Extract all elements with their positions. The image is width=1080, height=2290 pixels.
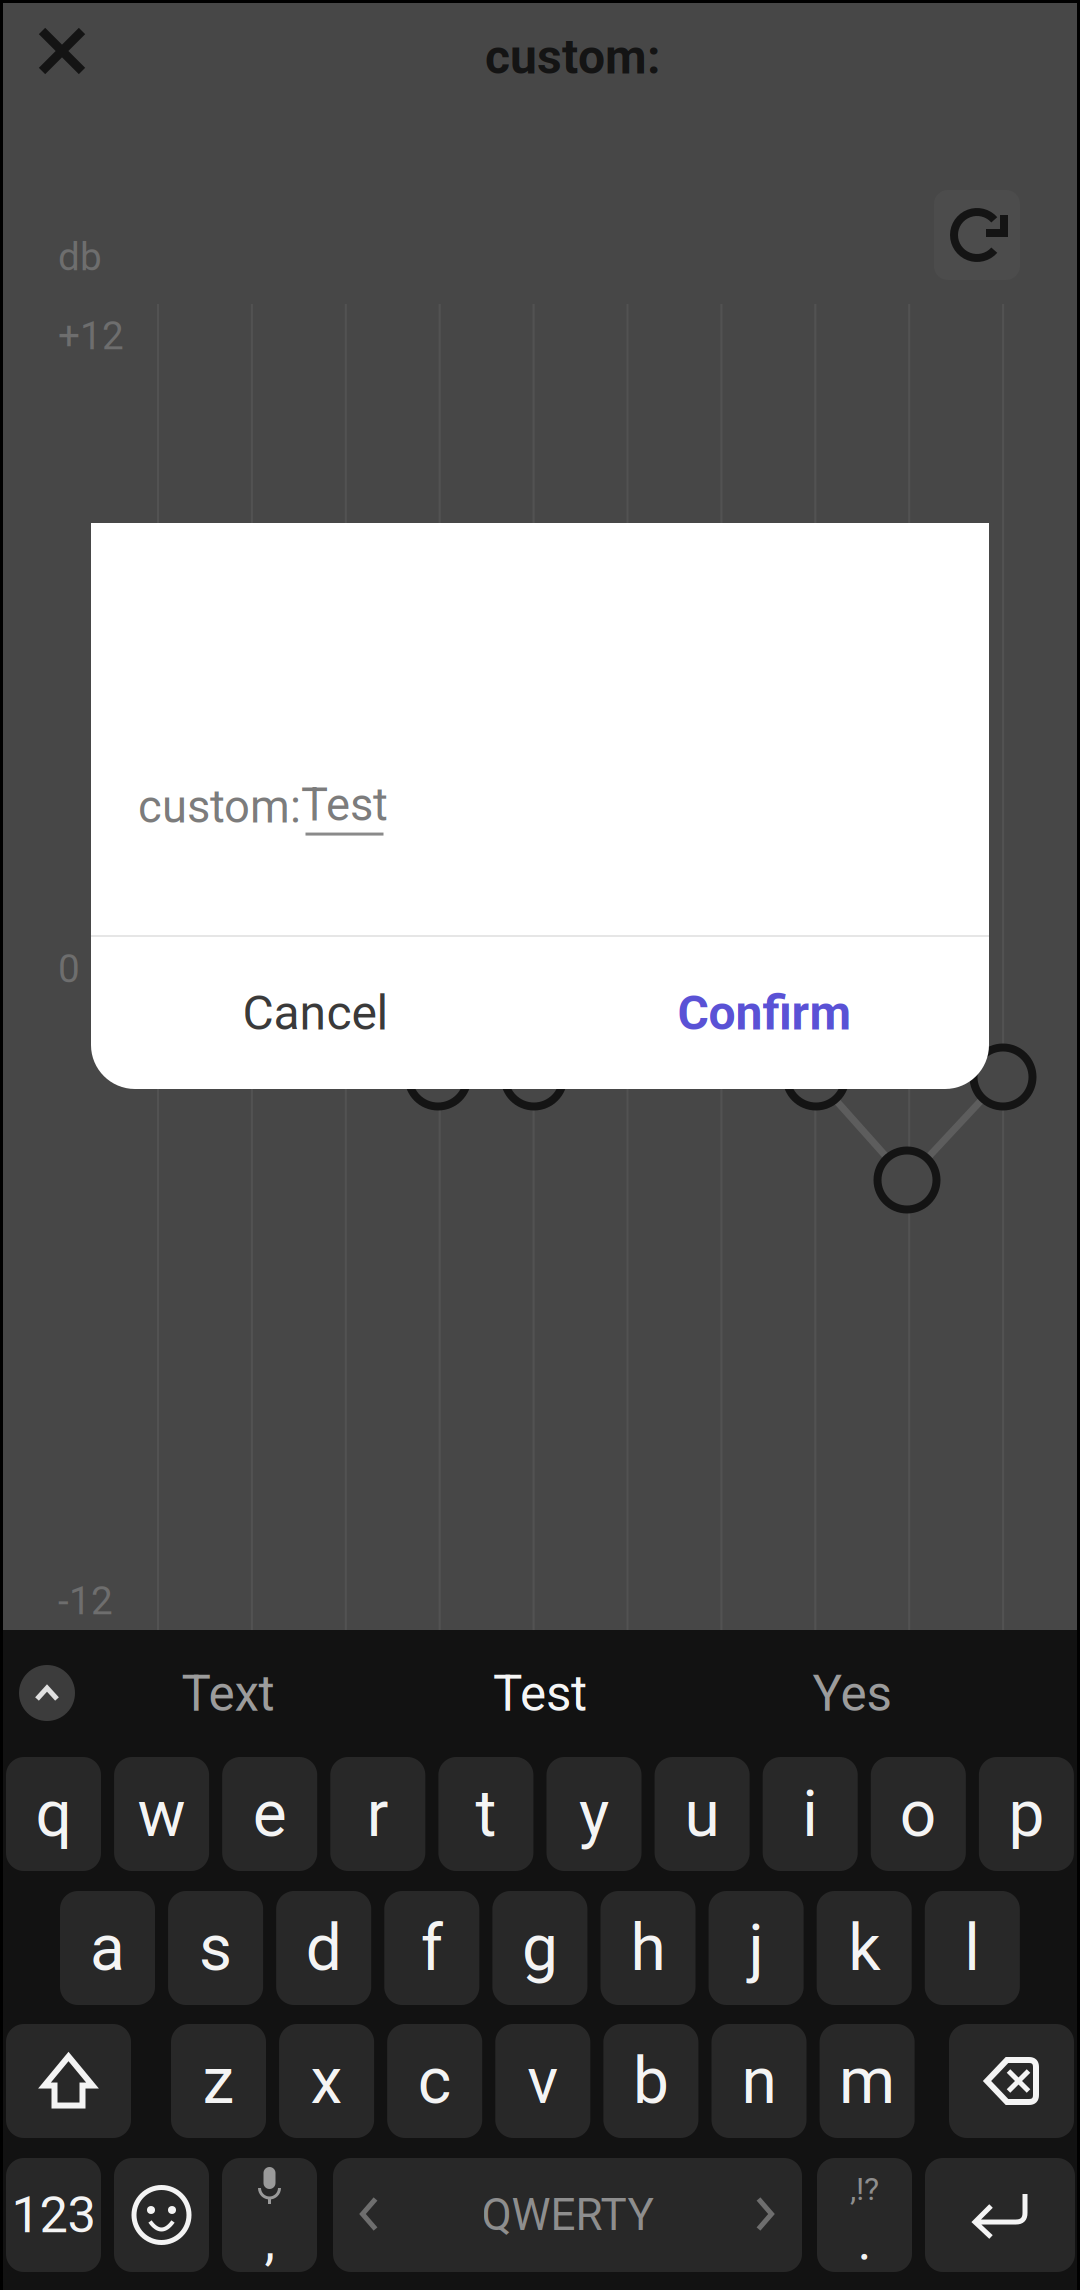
staticText: o bbox=[900, 1776, 937, 1851]
staticText: Cancel bbox=[242, 985, 388, 1041]
button[interactable]: p bbox=[979, 1757, 1074, 1871]
button[interactable]: h bbox=[600, 1891, 695, 2005]
button[interactable]: Shift bbox=[6, 2024, 131, 2138]
button[interactable]: w bbox=[114, 1757, 209, 1871]
staticText: i bbox=[802, 1776, 818, 1851]
staticText: m bbox=[839, 2043, 895, 2118]
staticText: 123 bbox=[11, 2185, 95, 2245]
staticText: f bbox=[421, 1910, 443, 1985]
button[interactable]: g bbox=[492, 1891, 587, 2005]
button[interactable]: j bbox=[709, 1891, 804, 2005]
button[interactable]: c bbox=[387, 2024, 482, 2138]
staticText: Confirm bbox=[677, 985, 851, 1041]
staticText: x bbox=[311, 2043, 343, 2118]
button[interactable]: Confirm bbox=[540, 937, 989, 1089]
staticText: r bbox=[367, 1776, 389, 1851]
button[interactable]: q bbox=[6, 1757, 101, 1871]
staticText: custom: bbox=[138, 780, 301, 833]
staticText: e bbox=[253, 1776, 287, 1851]
button[interactable]: b bbox=[603, 2024, 698, 2138]
staticText: z bbox=[202, 2043, 234, 2118]
button[interactable]: m bbox=[820, 2024, 915, 2138]
staticText: ,!? bbox=[850, 2170, 879, 2208]
button[interactable]: Expand suggestions bbox=[19, 1665, 75, 1721]
staticText: l bbox=[964, 1910, 980, 1985]
button[interactable]: Test bbox=[384, 1636, 696, 1752]
button[interactable]: d bbox=[276, 1891, 371, 2005]
staticText: , bbox=[264, 2210, 274, 2272]
button[interactable]: o bbox=[871, 1757, 966, 1871]
staticText: y bbox=[579, 1776, 609, 1851]
button[interactable]: v bbox=[495, 2024, 590, 2138]
staticText: k bbox=[848, 1910, 880, 1985]
staticText: d bbox=[306, 1910, 342, 1985]
staticText: +12 bbox=[58, 313, 124, 359]
staticText: w bbox=[138, 1776, 186, 1851]
staticText: db bbox=[58, 234, 102, 280]
staticText: s bbox=[199, 1910, 232, 1985]
button[interactable]: e bbox=[222, 1757, 317, 1871]
button[interactable]: z bbox=[171, 2024, 266, 2138]
staticText: c bbox=[418, 2043, 452, 2118]
button[interactable]: s bbox=[168, 1891, 263, 2005]
staticText: 0 bbox=[58, 946, 80, 992]
staticText: Yes bbox=[812, 1665, 891, 1723]
staticText: custom: bbox=[485, 29, 661, 85]
button[interactable]: x bbox=[279, 2024, 374, 2138]
button[interactable]: Text bbox=[72, 1636, 384, 1752]
button[interactable]: Emoji bbox=[114, 2158, 209, 2272]
button[interactable]: i bbox=[763, 1757, 858, 1871]
button[interactable]: Reset bbox=[934, 190, 1020, 280]
button[interactable]: k bbox=[817, 1891, 912, 2005]
staticText: v bbox=[527, 2043, 558, 2118]
button[interactable]: a bbox=[60, 1891, 155, 2005]
staticText: p bbox=[1008, 1776, 1044, 1851]
button[interactable]: Close bbox=[10, 0, 114, 102]
staticText: h bbox=[630, 1910, 665, 1985]
staticText: Text bbox=[181, 1665, 274, 1723]
button[interactable]: Cancel bbox=[91, 937, 540, 1089]
button[interactable]: Return bbox=[925, 2158, 1075, 2272]
button[interactable]: r bbox=[330, 1757, 425, 1871]
button[interactable]: Period bbox=[817, 2158, 912, 2272]
staticText: g bbox=[522, 1910, 558, 1985]
staticText: -12 bbox=[58, 1578, 113, 1624]
button[interactable]: l bbox=[925, 1891, 1020, 2005]
button[interactable]: f bbox=[384, 1891, 479, 2005]
staticText: a bbox=[90, 1910, 125, 1985]
button[interactable]: Comma bbox=[222, 2158, 317, 2272]
button[interactable]: u bbox=[655, 1757, 750, 1871]
staticText: u bbox=[685, 1776, 720, 1851]
staticText: n bbox=[741, 2043, 776, 2118]
staticText: Test bbox=[493, 1665, 587, 1723]
staticText: q bbox=[35, 1776, 71, 1851]
button[interactable]: t bbox=[438, 1757, 533, 1871]
button[interactable]: n bbox=[711, 2024, 806, 2138]
staticText: . bbox=[857, 2210, 871, 2272]
staticText: t bbox=[475, 1776, 496, 1851]
button[interactable]: Space bbox=[333, 2158, 802, 2272]
button[interactable]: y bbox=[546, 1757, 641, 1871]
staticText: b bbox=[633, 2043, 669, 2118]
staticText: QWERTY bbox=[481, 2189, 653, 2241]
staticText: Test bbox=[301, 778, 388, 831]
button[interactable]: 123 bbox=[6, 2158, 101, 2272]
staticText: j bbox=[749, 1910, 764, 1985]
button[interactable]: Yes bbox=[696, 1636, 1008, 1752]
button[interactable]: Backspace bbox=[949, 2024, 1074, 2138]
